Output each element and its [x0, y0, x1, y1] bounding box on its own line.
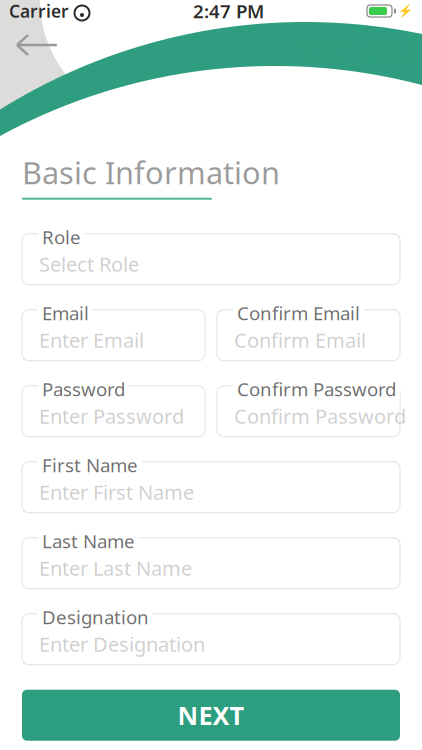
staticText: Select Role	[39, 251, 139, 277]
staticText: First Name	[42, 453, 138, 477]
staticText: Confirm Password	[237, 377, 396, 401]
button[interactable]: Back	[8, 25, 66, 65]
staticText: Enter Designation	[39, 631, 205, 657]
staticText: Basic Information	[22, 152, 280, 193]
staticText: Confirm Password	[234, 403, 406, 429]
staticText: Role	[42, 225, 81, 249]
staticText: SIGN UP	[300, 30, 422, 72]
staticText: Enter First Name	[39, 479, 194, 505]
staticText: NEXT	[177, 698, 244, 732]
staticText: Last Name	[42, 529, 135, 553]
staticText: Designation	[42, 605, 149, 629]
button[interactable]: SIGN UP	[300, 30, 422, 72]
staticText: Confirm Email	[237, 301, 360, 325]
staticText: ⚡	[398, 4, 413, 18]
staticText: Enter Password	[39, 403, 184, 429]
staticText: Confirm Email	[234, 327, 366, 353]
staticText: Enter Email	[39, 327, 144, 353]
staticText: Enter Last Name	[39, 555, 192, 581]
staticText: Carrier	[9, 0, 69, 22]
staticText: Email	[42, 301, 89, 325]
staticText: Password	[42, 377, 125, 401]
button[interactable]: NEXT	[22, 690, 400, 741]
staticText: 2:47 PM	[193, 0, 264, 23]
